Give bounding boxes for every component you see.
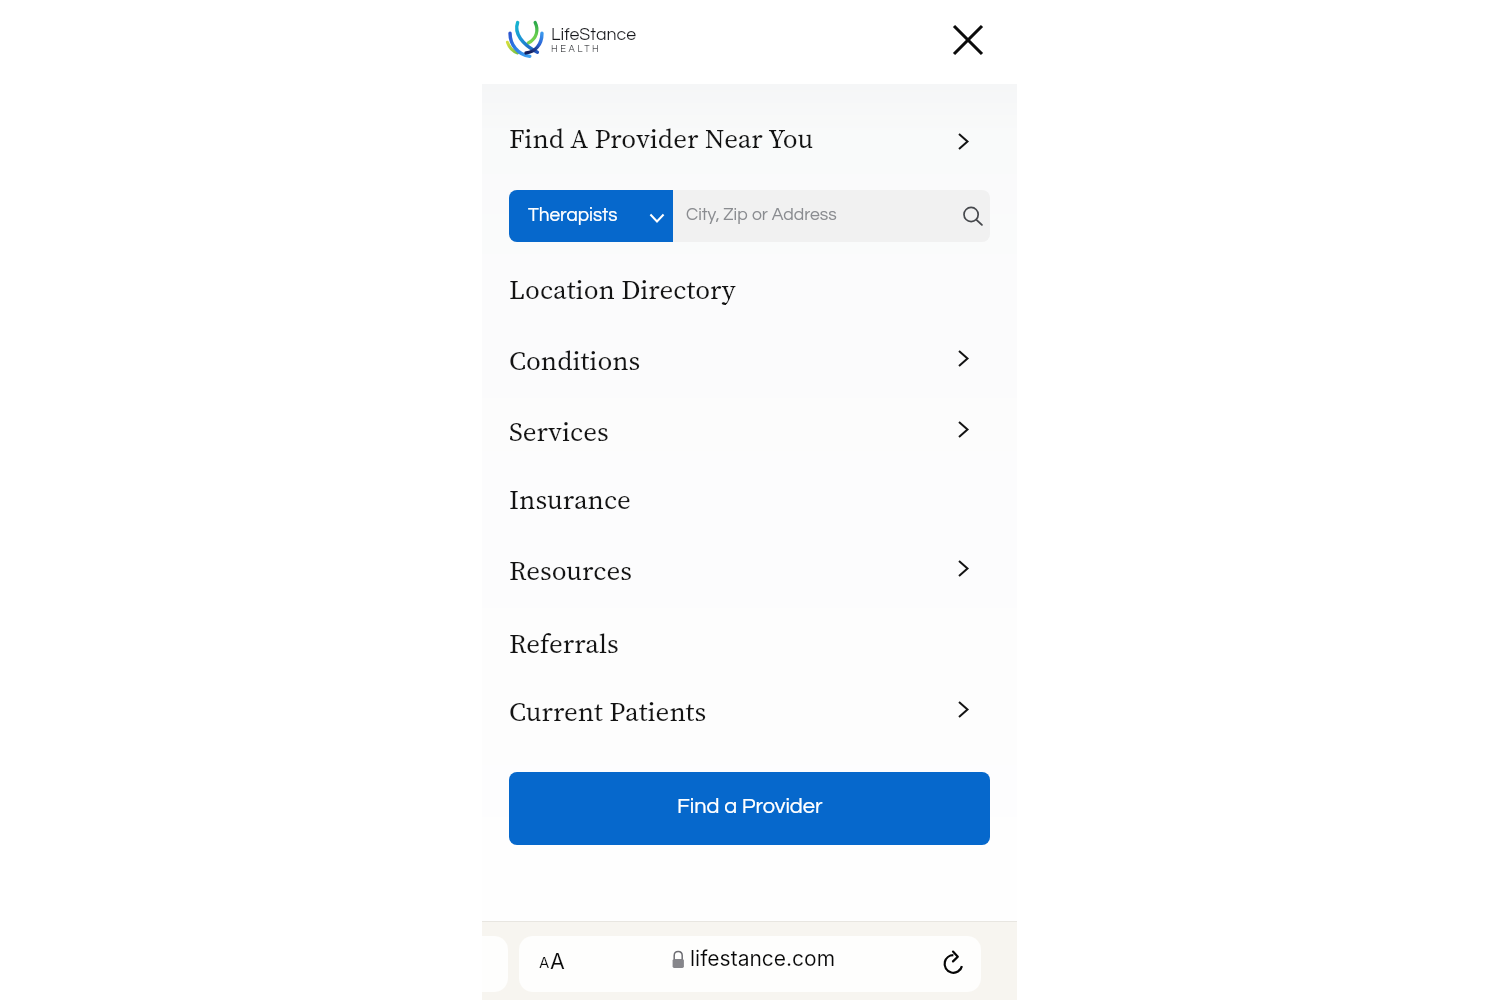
button[interactable]: Close menu	[942, 14, 994, 66]
staticText: A	[550, 948, 565, 974]
staticText: City, Zip or Address	[686, 206, 837, 224]
staticText: Services	[509, 413, 609, 450]
staticText: Therapists	[528, 205, 618, 225]
button[interactable]: Referrals	[482, 608, 1017, 678]
staticText: Location Directory	[509, 271, 736, 308]
button[interactable]: Address bar lifestance.com	[519, 936, 981, 992]
staticText: A	[539, 953, 550, 971]
staticText: Conditions	[509, 342, 641, 379]
button[interactable]: Location Directory	[482, 254, 1017, 324]
button[interactable]: Current Patients	[482, 676, 1017, 746]
button[interactable]: Find A Provider Near You	[482, 103, 1017, 173]
button[interactable]: Reload	[939, 946, 969, 976]
staticText: Find a Provider	[677, 795, 823, 817]
button[interactable]: Resources	[482, 535, 1017, 605]
button[interactable]: Insurance	[482, 464, 1017, 534]
button[interactable]: Find a Provider	[509, 772, 990, 845]
staticText: LifeStance	[551, 25, 637, 43]
button[interactable]	[509, 190, 990, 242]
staticText: Referrals	[509, 625, 619, 662]
button[interactable]: Services	[482, 396, 1017, 466]
staticText: Current Patients	[509, 693, 707, 730]
staticText: Insurance	[509, 481, 631, 518]
button[interactable]: Therapists	[509, 190, 673, 242]
staticText: Resources	[509, 552, 632, 589]
button[interactable]: Search	[957, 201, 987, 231]
staticText: HEALTH	[551, 44, 602, 54]
button[interactable]: Conditions	[482, 325, 1017, 395]
staticText: Find A Provider Near You	[509, 120, 814, 157]
staticText: lifestance.com	[690, 946, 836, 971]
